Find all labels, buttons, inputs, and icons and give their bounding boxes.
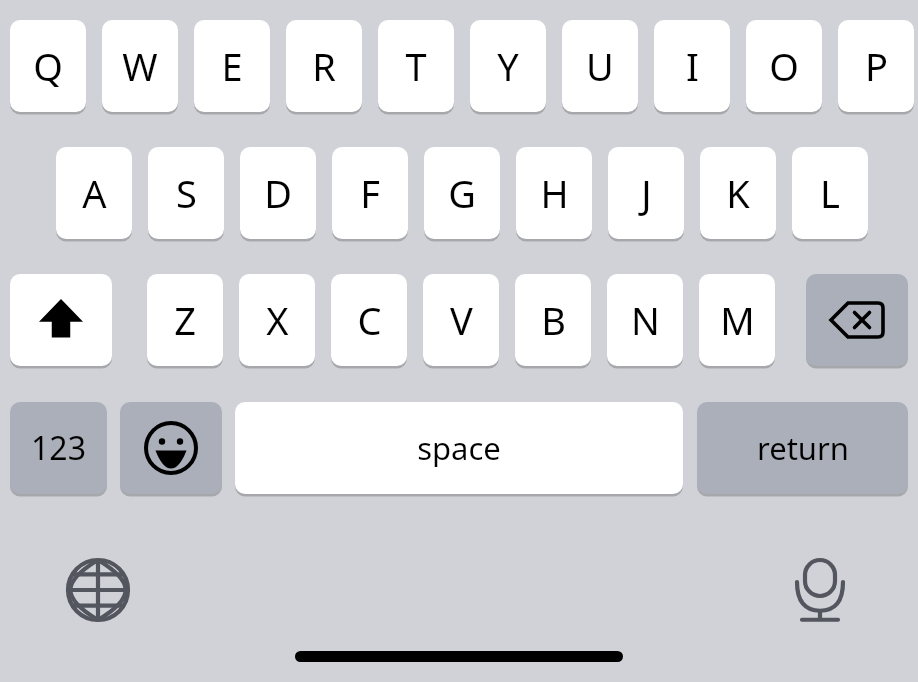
button[interactable]: F [332, 147, 408, 239]
button[interactable]: J [608, 147, 684, 239]
staticText: H [540, 167, 569, 219]
button[interactable]: Y [470, 20, 546, 112]
button[interactable]: B [515, 274, 591, 366]
button[interactable]: N [607, 274, 683, 366]
staticText: U [586, 40, 614, 92]
staticText: J [641, 167, 652, 219]
staticText: C [357, 294, 382, 346]
staticText: B [541, 294, 566, 346]
button[interactable]: C [331, 274, 407, 366]
button[interactable]: S [148, 147, 224, 239]
staticText: Q [33, 40, 63, 92]
staticText: space [417, 427, 501, 469]
staticText: M [720, 294, 755, 346]
staticText: K [726, 167, 750, 219]
staticText: A [82, 167, 107, 219]
button[interactable]: H [516, 147, 592, 239]
button[interactable]: I [654, 20, 730, 112]
staticText: N [631, 294, 660, 346]
button[interactable]: 123 [10, 402, 107, 494]
staticText: Z [174, 294, 196, 346]
button[interactable]: Emoji [120, 402, 222, 494]
button[interactable]: O [746, 20, 822, 112]
staticText: D [264, 167, 292, 219]
button[interactable]: U [562, 20, 638, 112]
staticText: I [686, 40, 699, 92]
staticText: G [448, 167, 476, 219]
staticText: W [122, 40, 158, 92]
staticText: O [769, 40, 799, 92]
button[interactable]: G [424, 147, 500, 239]
staticText: V [450, 294, 473, 346]
button[interactable]: P [838, 20, 914, 112]
button[interactable]: R [286, 20, 362, 112]
button[interactable]: M [699, 274, 775, 366]
button[interactable]: K [700, 147, 776, 239]
staticText: S [176, 167, 197, 219]
button[interactable]: Switch keyboard language [58, 550, 138, 630]
button[interactable]: Z [147, 274, 223, 366]
staticText: T [405, 40, 427, 92]
staticText: P [865, 40, 888, 92]
staticText: R [312, 40, 336, 92]
staticText: X [266, 294, 289, 346]
button[interactable]: Shift [10, 274, 112, 366]
button[interactable]: Delete [806, 274, 908, 366]
button[interactable]: X [239, 274, 315, 366]
button[interactable]: A [56, 147, 132, 239]
button[interactable]: T [378, 20, 454, 112]
staticText: F [360, 167, 380, 219]
staticText: E [221, 40, 243, 92]
button[interactable]: V [423, 274, 499, 366]
button[interactable]: W [102, 20, 178, 112]
button[interactable]: E [194, 20, 270, 112]
button[interactable]: L [792, 147, 868, 239]
button[interactable]: Dictation [780, 550, 860, 630]
staticText: Y [497, 40, 519, 92]
button[interactable]: space [235, 402, 683, 494]
staticText: return [757, 427, 849, 469]
button[interactable]: Q [10, 20, 86, 112]
staticText: 123 [31, 426, 86, 470]
button[interactable]: D [240, 147, 316, 239]
staticText: L [820, 167, 840, 219]
button[interactable]: return [697, 402, 908, 494]
